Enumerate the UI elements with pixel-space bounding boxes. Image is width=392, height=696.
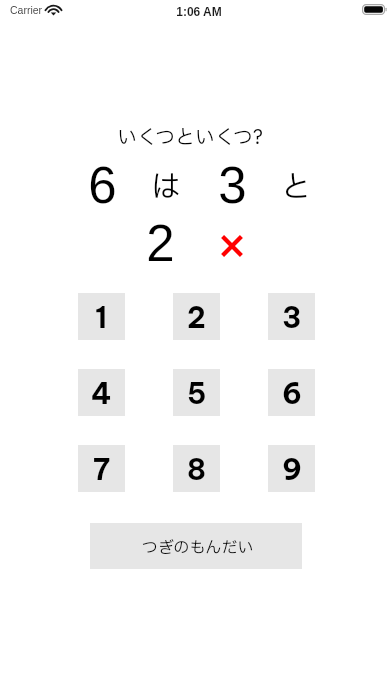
other: Incorrect answer bbox=[221, 235, 243, 257]
staticText: 8 bbox=[187, 451, 207, 487]
button[interactable]: つぎのもんだい bbox=[90, 523, 302, 569]
staticText: つぎのもんだい bbox=[142, 536, 254, 560]
button[interactable]: 2 bbox=[173, 293, 220, 340]
staticText: と bbox=[281, 165, 311, 210]
staticText: は bbox=[150, 165, 180, 210]
staticText: 6 bbox=[282, 375, 302, 411]
button[interactable]: 7 bbox=[78, 445, 125, 492]
staticText: 1:06 AM bbox=[176, 5, 222, 18]
button[interactable]: 5 bbox=[173, 369, 220, 416]
other: Wi-Fi bbox=[46, 5, 61, 15]
button[interactable]: 6 bbox=[268, 369, 315, 416]
staticText: 6 bbox=[88, 157, 117, 207]
staticText: いくつといくつ? bbox=[117, 123, 263, 152]
other: Battery full bbox=[362, 4, 387, 15]
staticText: 5 bbox=[187, 375, 207, 411]
staticText: 2 bbox=[187, 299, 206, 335]
button[interactable]: 9 bbox=[268, 445, 315, 492]
staticText: 2 bbox=[146, 215, 175, 265]
staticText: 4 bbox=[91, 375, 112, 411]
staticText: Carrier bbox=[10, 4, 43, 16]
staticText: 3 bbox=[218, 157, 247, 207]
button[interactable]: 1 bbox=[78, 293, 125, 340]
button[interactable]: 4 bbox=[78, 369, 125, 416]
button[interactable]: 8 bbox=[173, 445, 220, 492]
staticText: 7 bbox=[93, 451, 111, 487]
staticText: 1 bbox=[95, 299, 108, 335]
button[interactable]: 3 bbox=[268, 293, 315, 340]
staticText: 9 bbox=[282, 451, 302, 487]
staticText: 3 bbox=[282, 299, 302, 335]
